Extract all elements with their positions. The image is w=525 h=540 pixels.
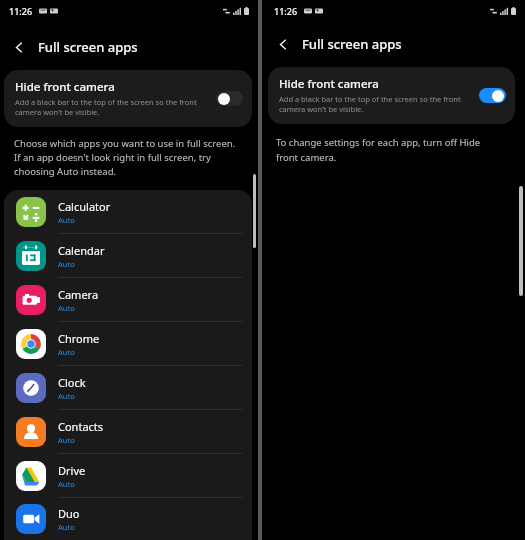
staticText: Auto bbox=[58, 522, 75, 532]
button[interactable]: Duo bbox=[4, 498, 252, 540]
staticText: Auto bbox=[58, 479, 75, 489]
staticText: Choose which apps you want to use in ful… bbox=[14, 137, 242, 178]
button[interactable]: Contacts bbox=[4, 410, 252, 453]
staticText: Calculator bbox=[58, 199, 111, 214]
staticText: 11:26 bbox=[9, 5, 33, 17]
button[interactable]: Camera bbox=[4, 278, 252, 321]
staticText: Add a black bar to the top of the screen… bbox=[279, 94, 473, 114]
staticText: Hide front camera bbox=[279, 76, 379, 92]
staticText: Full screen apps bbox=[302, 35, 402, 53]
button[interactable]: Back bbox=[270, 31, 296, 57]
staticText: 11:26 bbox=[274, 5, 298, 17]
button[interactable]: Hide front camera bbox=[4, 70, 252, 127]
staticText: Contacts bbox=[58, 419, 104, 434]
button[interactable]: Calculator bbox=[4, 190, 252, 233]
button[interactable]: Calendar bbox=[4, 234, 252, 277]
staticText: Auto bbox=[58, 259, 75, 269]
staticText: Full screen apps bbox=[38, 38, 138, 56]
button[interactable]: Back bbox=[6, 34, 32, 60]
staticText: Camera bbox=[58, 287, 99, 302]
staticText: Duo bbox=[58, 506, 80, 521]
button[interactable]: Hide front camera bbox=[268, 67, 515, 124]
staticText: Hide front camera bbox=[15, 79, 115, 95]
staticText: Chrome bbox=[58, 331, 100, 346]
button[interactable]: Drive bbox=[4, 454, 252, 497]
button[interactable]: Hide front camera toggle bbox=[216, 91, 243, 106]
button[interactable]: Clock bbox=[4, 366, 252, 409]
staticText: Auto bbox=[58, 391, 75, 401]
staticText: Clock bbox=[58, 375, 86, 390]
button[interactable]: Hide front camera toggle bbox=[479, 88, 506, 103]
staticText: To change settings for each app, turn of… bbox=[276, 136, 503, 164]
staticText: Auto bbox=[58, 303, 75, 313]
staticText: Auto bbox=[58, 347, 75, 357]
staticText: Auto bbox=[58, 435, 75, 445]
staticText: Drive bbox=[58, 463, 86, 478]
staticText: Auto bbox=[58, 215, 75, 225]
staticText: Add a black bar to the top of the screen… bbox=[15, 97, 210, 117]
staticText: Calendar bbox=[58, 243, 105, 258]
button[interactable]: Chrome bbox=[4, 322, 252, 365]
